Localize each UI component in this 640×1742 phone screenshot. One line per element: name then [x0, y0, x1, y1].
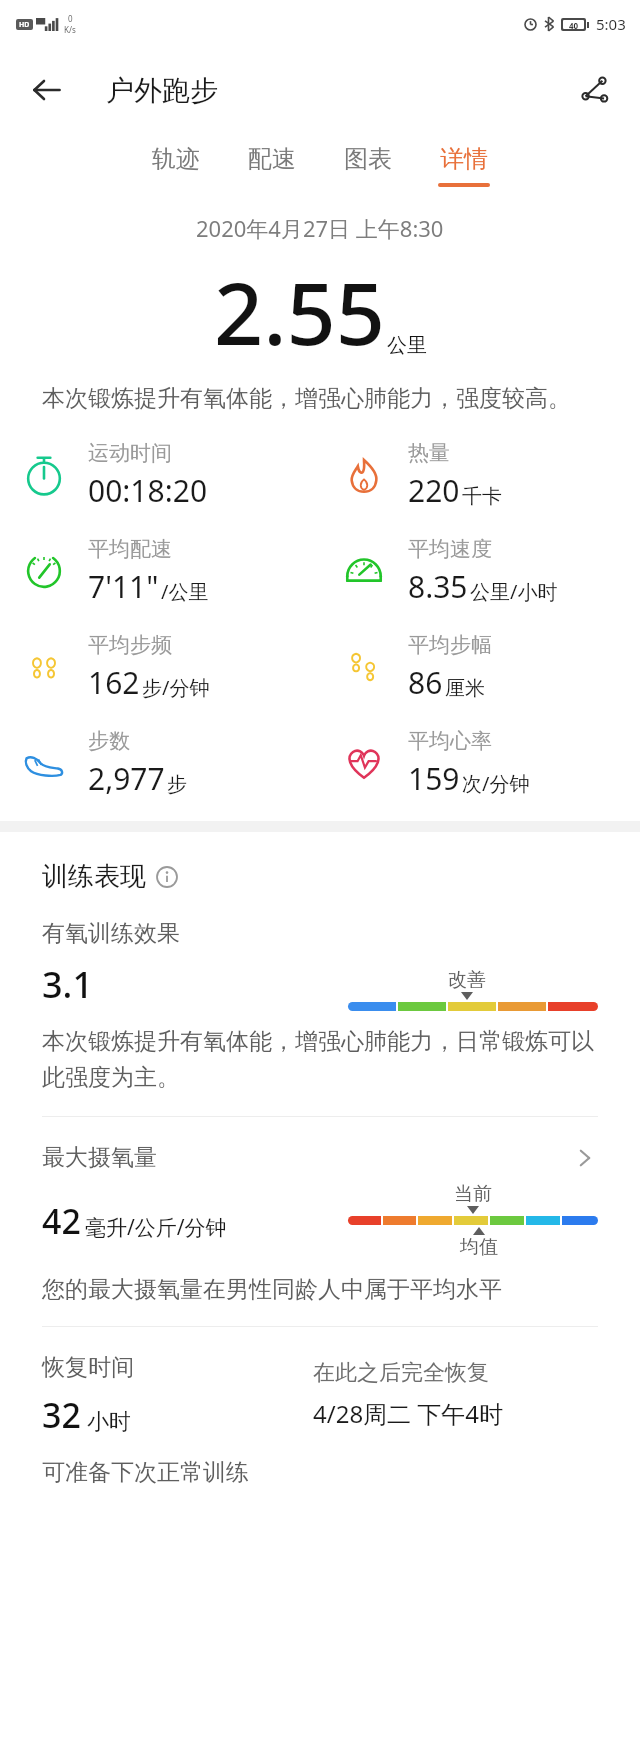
button[interactable]: 轨迹: [128, 144, 224, 187]
staticText: 公里/小时: [470, 578, 558, 605]
button[interactable]: Share: [570, 66, 618, 114]
staticText: 最大摄氧量: [42, 1143, 157, 1172]
staticText: 当前: [454, 1182, 492, 1206]
staticText: 平均配速: [88, 536, 172, 562]
staticText: 220: [408, 470, 460, 511]
staticText: 恢复时间: [42, 1353, 134, 1382]
staticText: 公里: [387, 333, 427, 358]
button[interactable]: 平均步频: [0, 619, 320, 715]
staticText: 5:03: [596, 14, 626, 34]
staticText: 8.35: [408, 566, 468, 607]
staticText: 次/分钟: [462, 770, 530, 797]
button[interactable]: 平均速度: [320, 523, 640, 619]
button[interactable]: 详情: [416, 144, 512, 187]
staticText: HD: [19, 20, 30, 30]
staticText: 平均速度: [408, 536, 492, 562]
staticText: 配速: [248, 144, 296, 174]
button[interactable]: 平均心率: [320, 715, 640, 811]
staticText: 在此之后完全恢复: [313, 1359, 489, 1387]
staticText: 7'11": [88, 566, 159, 607]
staticText: 00:18:20: [88, 470, 208, 511]
staticText: 图表: [344, 144, 392, 174]
staticText: 本次锻炼提升有氧体能，增强心肺能力，强度较高。: [42, 384, 602, 413]
staticText: 32: [42, 1392, 81, 1438]
button[interactable]: 步数: [0, 715, 320, 811]
staticText: 厘米: [445, 676, 485, 701]
button[interactable]: Back: [24, 67, 70, 113]
button[interactable]: 平均配速: [0, 523, 320, 619]
staticText: 您的最大摄氧量在男性同龄人中属于平均水平: [42, 1275, 502, 1304]
button[interactable]: 图表: [320, 144, 416, 187]
button[interactable]: 运动时间: [0, 427, 320, 523]
button[interactable]: 配速: [224, 144, 320, 187]
staticText: 有氧训练效果: [42, 919, 180, 948]
staticText: 本次锻炼提升有氧体能，增强心肺能力，日常锻炼可以此强度为主。: [42, 1027, 598, 1092]
staticText: 平均步频: [88, 632, 172, 658]
staticText: 42: [42, 1198, 81, 1244]
staticText: 步/分钟: [142, 674, 210, 701]
staticText: 40: [569, 20, 579, 29]
staticText: 2,977: [88, 758, 165, 799]
button[interactable]: 训练表现: [42, 860, 178, 893]
staticText: 2.55: [214, 253, 385, 370]
staticText: K/s: [64, 24, 76, 35]
staticText: 训练表现: [42, 860, 146, 893]
staticText: 千卡: [462, 484, 502, 509]
staticText: 轨迹: [152, 144, 200, 174]
button[interactable]: 热量: [320, 427, 640, 523]
staticText: 2020年4月27日 上午8:30: [196, 213, 444, 243]
button[interactable]: 最大摄氧量: [42, 1143, 598, 1172]
staticText: 步数: [88, 728, 130, 754]
button[interactable]: 平均步幅: [320, 619, 640, 715]
staticText: 热量: [408, 440, 450, 466]
staticText: 步: [167, 772, 187, 797]
staticText: 4/28周二 下午4时: [313, 1397, 504, 1430]
other: More: [572, 1145, 598, 1171]
staticText: /公里: [161, 578, 209, 605]
staticText: 162: [88, 662, 140, 703]
staticText: 可准备下次正常训练: [42, 1458, 249, 1487]
staticText: 平均心率: [408, 728, 492, 754]
staticText: 0: [68, 13, 73, 24]
staticText: 86: [408, 662, 443, 703]
staticText: 3.1: [42, 960, 93, 1009]
staticText: 户外跑步: [106, 73, 218, 108]
staticText: 运动时间: [88, 440, 172, 466]
staticText: 毫升/公斤/分钟: [85, 1213, 227, 1242]
staticText: 均值: [460, 1235, 498, 1259]
staticText: 详情: [440, 144, 488, 174]
staticText: 159: [408, 758, 460, 799]
staticText: 平均步幅: [408, 632, 492, 658]
staticText: 改善: [448, 968, 486, 992]
staticText: 小时: [87, 1408, 131, 1436]
